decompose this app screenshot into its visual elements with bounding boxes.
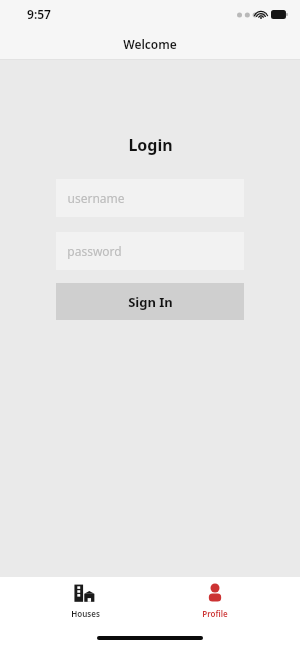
button[interactable]: Houses: [58, 577, 112, 619]
staticText: Welcome: [123, 36, 177, 52]
staticText: Sign In: [128, 293, 173, 311]
button[interactable]: username: [56, 179, 244, 217]
button[interactable]: password: [56, 232, 244, 270]
staticText: 9:57: [27, 6, 51, 22]
staticText: Profile: [202, 608, 228, 619]
staticText: username: [67, 190, 125, 206]
button[interactable]: Profile: [188, 577, 242, 619]
button[interactable]: Sign In: [56, 283, 244, 320]
staticText: Houses: [71, 608, 100, 619]
staticText: password: [67, 243, 122, 259]
staticText: Login: [128, 134, 173, 156]
